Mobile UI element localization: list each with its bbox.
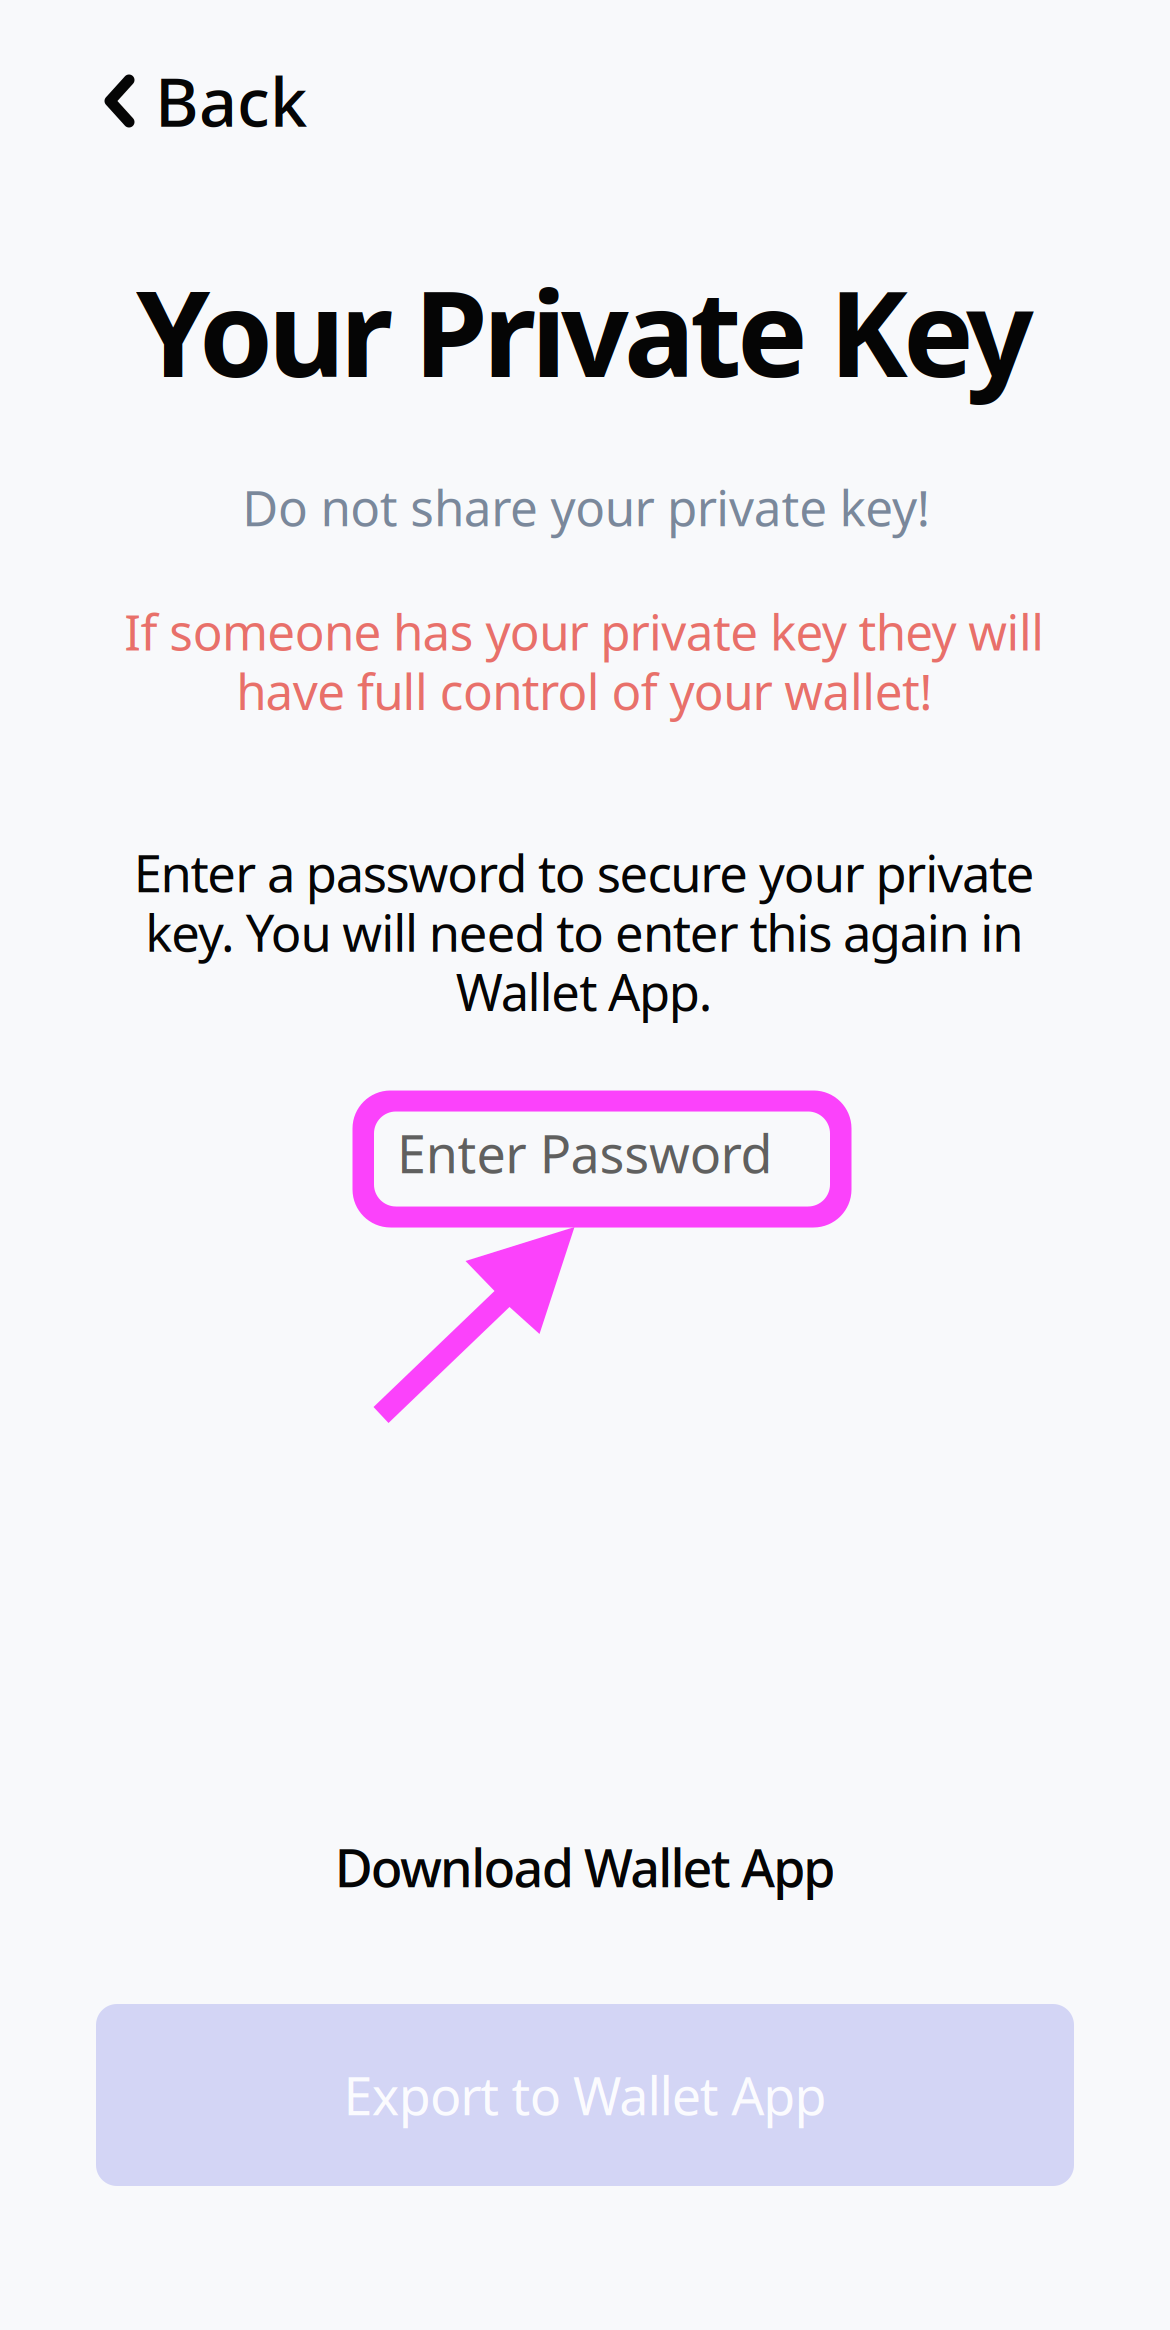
staticText: Enter a password to secure your private … [133, 839, 1035, 1025]
staticText: Export to Wallet App [344, 2060, 826, 2130]
button[interactable]: Download Wallet App [307, 1800, 863, 1934]
staticText: Your Private Key [136, 252, 1034, 410]
staticText: Enter Password [397, 1118, 772, 1188]
button[interactable]: Enter Password [352, 1090, 851, 1227]
staticText: Do not share your private key! [242, 474, 930, 540]
button[interactable]: Export to Wallet App [96, 2004, 1074, 2186]
button[interactable]: Back [83, 37, 333, 165]
staticText: If someone has your private key they wil… [124, 598, 1044, 723]
staticText: Back [155, 57, 307, 145]
staticText: Download Wallet App [335, 1832, 835, 1902]
